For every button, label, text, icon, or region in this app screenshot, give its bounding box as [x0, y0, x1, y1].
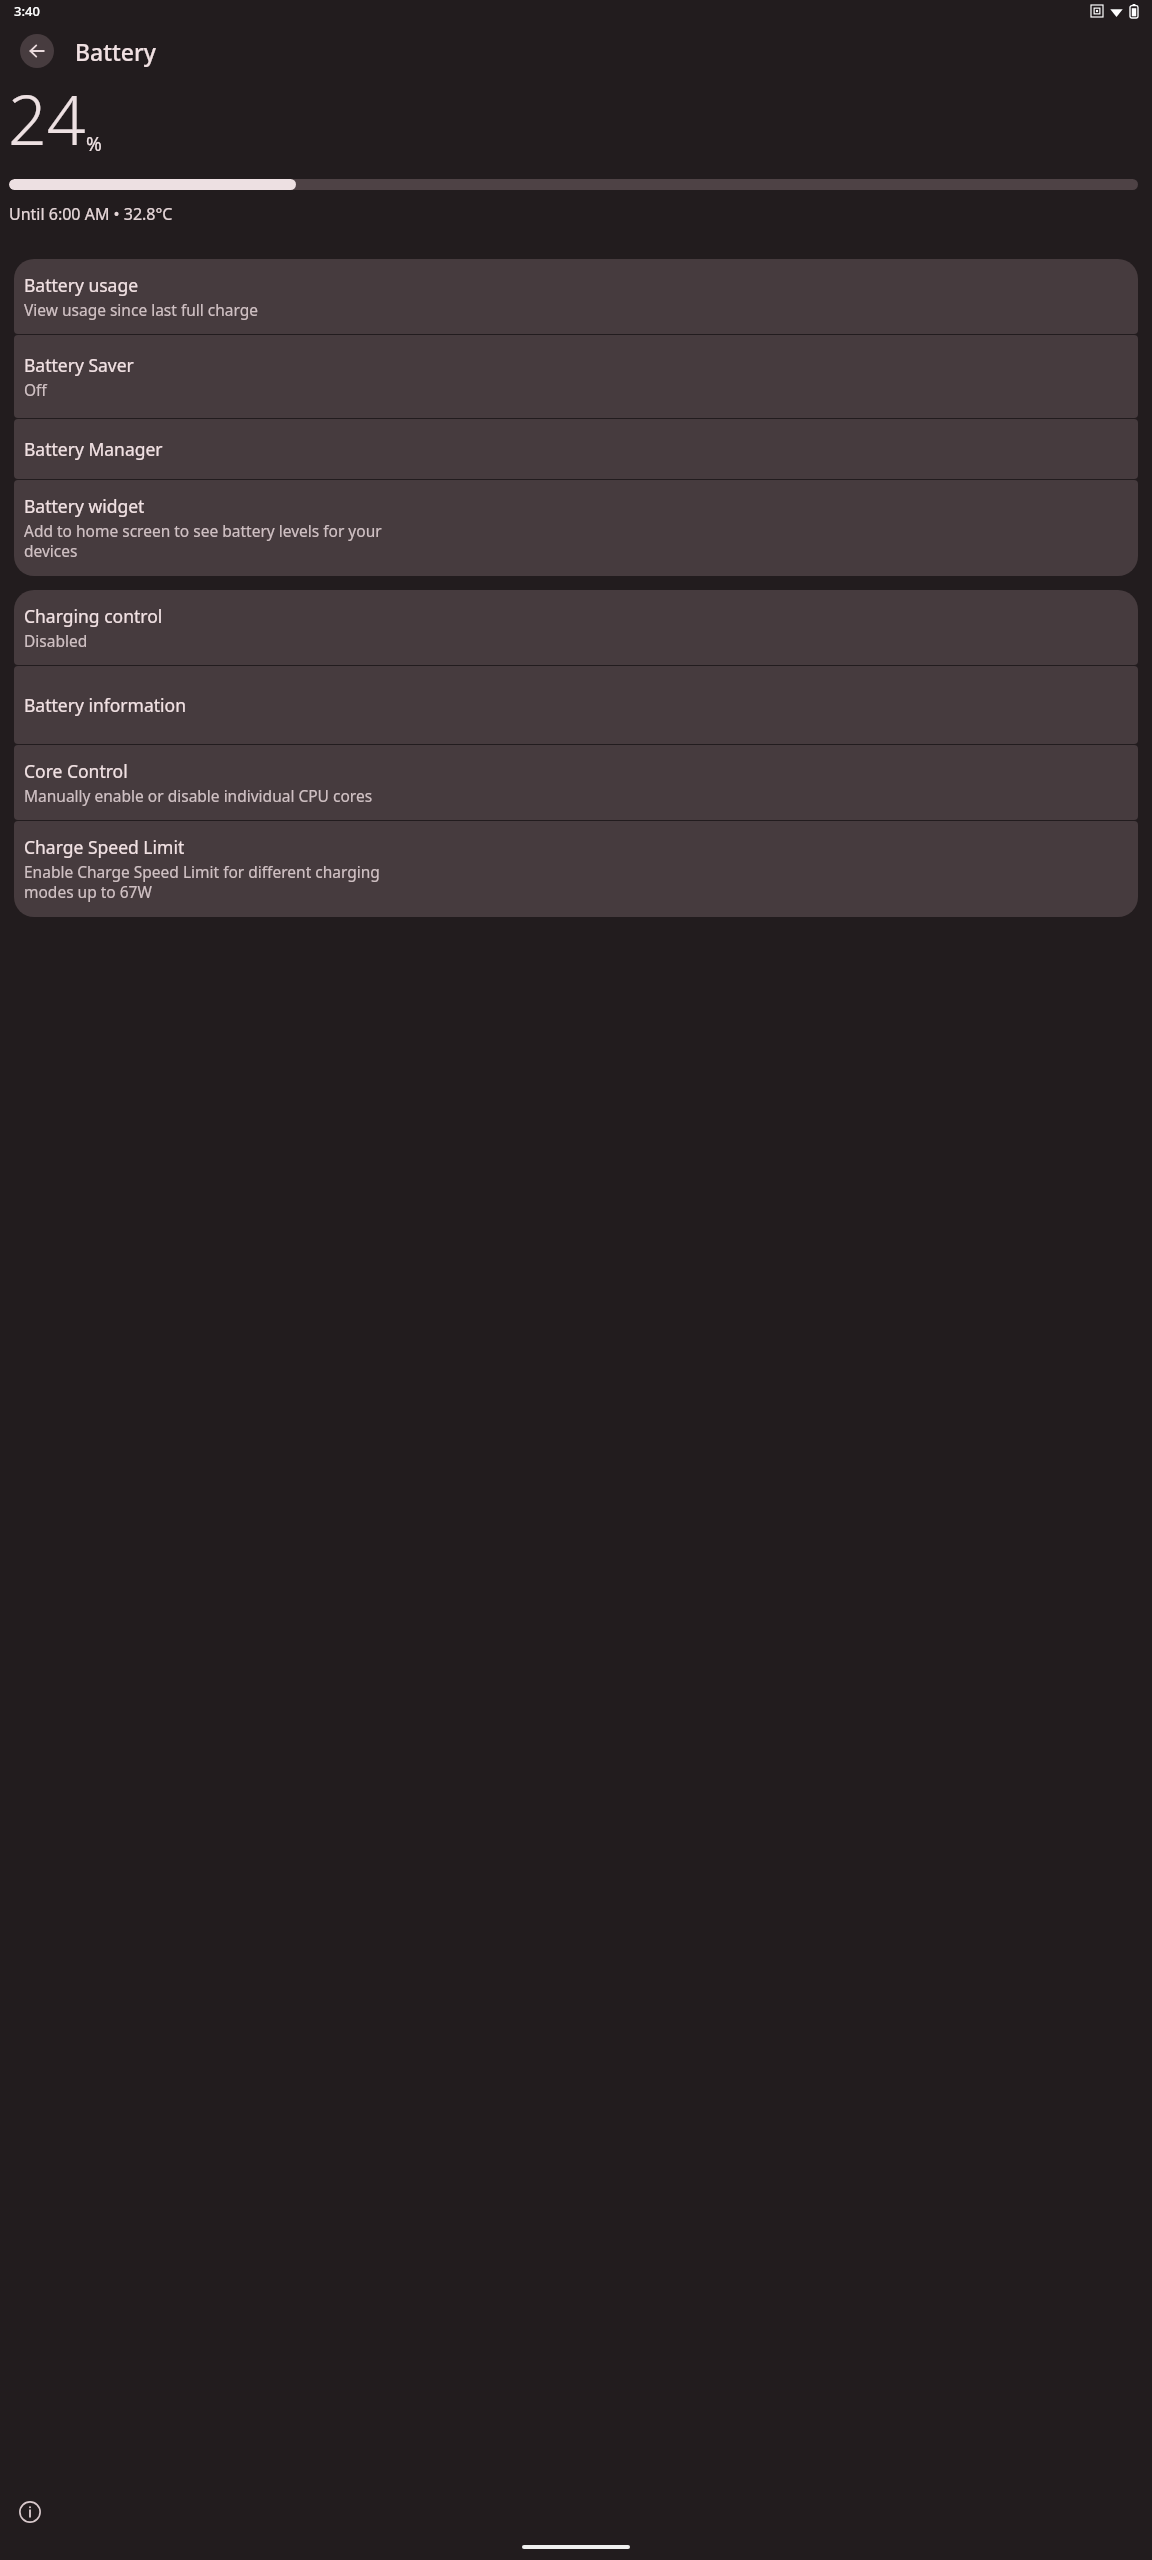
staticText: Core Control: [24, 759, 128, 783]
staticText: %: [86, 131, 102, 157]
staticText: Battery Saver: [24, 353, 134, 377]
staticText: 24: [8, 72, 86, 165]
staticText: Battery Manager: [24, 437, 163, 461]
staticText: Battery usage: [24, 273, 139, 297]
staticText: Disabled: [24, 630, 88, 651]
staticText: Charge Speed Limit: [24, 835, 185, 859]
button[interactable]: Battery information: [8, 2490, 52, 2534]
button[interactable]: Charge Speed Limit: [14, 821, 1138, 917]
button[interactable]: Charging control: [14, 590, 1138, 665]
button[interactable]: Core Control: [14, 745, 1138, 820]
staticText: Enable Charge Speed Limit for different …: [24, 861, 380, 903]
staticText: Battery information: [24, 693, 186, 717]
staticText: View usage since last full charge: [24, 299, 259, 320]
button[interactable]: Battery information: [14, 666, 1138, 744]
button[interactable]: Battery widget: [14, 480, 1138, 576]
staticText: Off: [24, 379, 47, 400]
staticText: Battery: [75, 36, 156, 67]
staticText: Manually enable or disable individual CP…: [24, 785, 373, 806]
button[interactable]: Battery Saver: [14, 335, 1138, 418]
staticText: Battery widget: [24, 494, 145, 518]
staticText: Charging control: [24, 604, 163, 628]
button[interactable]: Back: [20, 34, 54, 68]
staticText: Until 6:00 AM • 32.8°C: [9, 203, 173, 225]
button[interactable]: Battery usage: [14, 259, 1138, 334]
staticText: Add to home screen to see battery levels…: [24, 520, 382, 562]
staticText: 3:40: [14, 2, 40, 20]
button[interactable]: Battery Manager: [14, 419, 1138, 479]
